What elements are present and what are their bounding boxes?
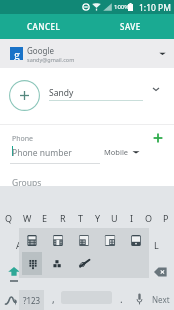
button[interactable]: Groups bbox=[0, 170, 174, 192]
button[interactable]: SAVE bbox=[87, 14, 174, 39]
button[interactable]: Floating keyboard bbox=[71, 228, 97, 252]
staticText: 1:10 PM bbox=[139, 2, 171, 14]
staticText: O bbox=[145, 212, 153, 224]
button[interactable]: O bbox=[140, 204, 157, 231]
staticText: . bbox=[120, 292, 123, 306]
button[interactable]: Docked keyboard bbox=[123, 228, 149, 252]
button[interactable]: . bbox=[113, 290, 129, 310]
button[interactable]: P bbox=[157, 204, 174, 231]
button[interactable]: X bbox=[45, 258, 62, 285]
staticText: P bbox=[163, 212, 169, 224]
staticText: CANCEL bbox=[27, 21, 61, 32]
button[interactable]: Number pad bbox=[19, 252, 45, 275]
button[interactable]: W bbox=[18, 204, 36, 231]
staticText: H bbox=[102, 239, 109, 251]
staticText: Sandy bbox=[49, 87, 74, 99]
button[interactable]: CANCEL bbox=[0, 14, 87, 39]
button[interactable]: Next bbox=[148, 288, 174, 310]
staticText: L bbox=[154, 239, 159, 251]
staticText: W bbox=[23, 212, 32, 224]
button[interactable]: B bbox=[96, 258, 113, 285]
staticText: Phone number bbox=[12, 147, 72, 159]
button[interactable]: K bbox=[131, 231, 148, 258]
staticText: Google bbox=[27, 45, 54, 56]
staticText: K bbox=[137, 239, 143, 251]
staticText: 100% bbox=[114, 3, 130, 11]
button[interactable]: Q bbox=[0, 204, 18, 231]
staticText: I bbox=[130, 212, 134, 224]
button[interactable]: L bbox=[148, 231, 165, 258]
button[interactable]: Backspace bbox=[147, 258, 174, 285]
staticText: Z bbox=[34, 266, 40, 278]
button[interactable]: E bbox=[36, 204, 54, 231]
button[interactable]: Z bbox=[28, 258, 45, 285]
button[interactable]: Phone type bbox=[131, 147, 141, 157]
button[interactable]: Add photo bbox=[9, 80, 40, 111]
button[interactable]: Expand name bbox=[150, 83, 162, 95]
staticText: SAVE bbox=[120, 21, 141, 32]
button[interactable]: M bbox=[130, 258, 147, 285]
button[interactable]: Handwriting bbox=[2, 289, 19, 310]
button[interactable]: Emoji bbox=[45, 252, 71, 275]
staticText: A bbox=[16, 239, 22, 251]
button[interactable]: Voice input bbox=[131, 288, 147, 310]
staticText: E bbox=[42, 212, 48, 224]
button[interactable]: Add phone number bbox=[151, 131, 165, 145]
button[interactable]: J bbox=[114, 231, 131, 258]
button[interactable]: U bbox=[106, 204, 123, 231]
button[interactable]: S bbox=[28, 231, 46, 258]
button[interactable]: Full keyboard bbox=[19, 228, 45, 252]
staticText: Groups bbox=[12, 177, 42, 189]
staticText: Mobile bbox=[104, 147, 129, 157]
button[interactable]: N bbox=[113, 258, 130, 285]
other: Choose account bbox=[158, 49, 167, 58]
button[interactable]: , bbox=[45, 290, 61, 310]
button[interactable]: G bbox=[80, 231, 97, 258]
button[interactable]: A bbox=[10, 231, 28, 258]
staticText: ?123 bbox=[23, 295, 41, 306]
button[interactable]: I bbox=[123, 204, 140, 231]
staticText: g bbox=[14, 47, 20, 60]
button[interactable]: ?123 bbox=[19, 290, 44, 310]
staticText: Q bbox=[5, 212, 13, 224]
button[interactable]: H bbox=[97, 231, 114, 258]
staticText: S bbox=[35, 239, 40, 251]
staticText: U bbox=[111, 212, 118, 224]
staticText: sandy@gmail.com bbox=[27, 56, 75, 63]
button[interactable]: F bbox=[63, 231, 80, 258]
button[interactable]: C bbox=[62, 258, 79, 285]
staticText: Y bbox=[95, 212, 101, 224]
staticText: T bbox=[78, 212, 84, 224]
staticText: , bbox=[52, 292, 55, 306]
button[interactable]: One handed keyboard bbox=[97, 228, 123, 252]
button[interactable]: Y bbox=[89, 204, 106, 231]
staticText: X bbox=[51, 266, 57, 278]
staticText: G bbox=[85, 239, 92, 251]
button[interactable]: Shift bbox=[0, 258, 28, 285]
button[interactable]: Split keyboard bbox=[45, 228, 71, 252]
staticText: D bbox=[51, 239, 58, 251]
button[interactable]: T bbox=[72, 204, 89, 231]
staticText: R bbox=[60, 212, 66, 224]
button[interactable]: Handwriting bbox=[71, 252, 97, 275]
button[interactable]: g bbox=[0, 39, 174, 68]
button[interactable]: V bbox=[79, 258, 96, 285]
staticText: Next bbox=[152, 294, 170, 305]
button[interactable]: D bbox=[46, 231, 63, 258]
button[interactable]: R bbox=[54, 204, 72, 231]
staticText: Phone bbox=[12, 134, 34, 144]
